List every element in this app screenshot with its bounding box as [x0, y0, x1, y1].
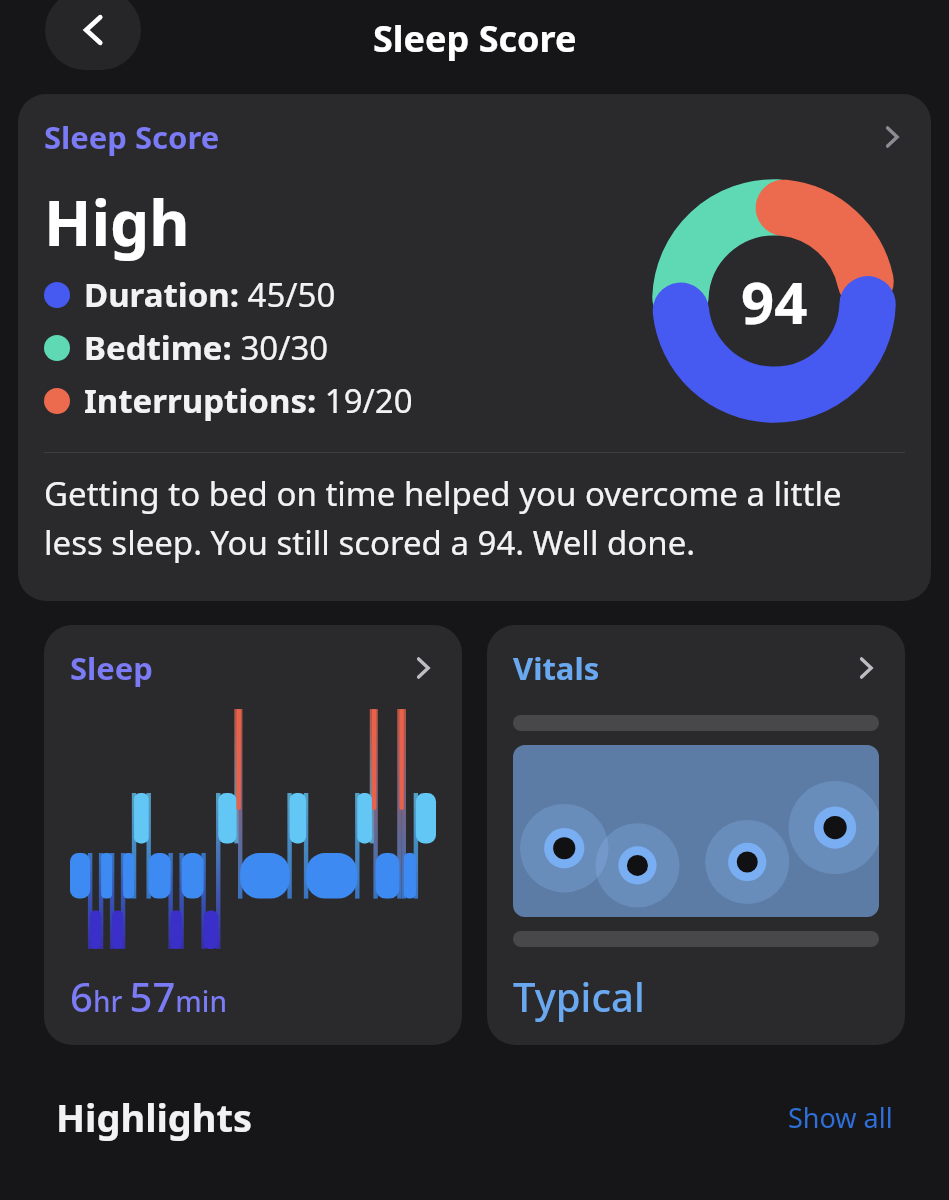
staticText: Sleep [70, 647, 153, 689]
staticText: Typical [513, 969, 645, 1023]
button[interactable]: Back [45, 0, 141, 70]
staticText: Getting to bed on time helped you overco… [44, 471, 905, 565]
staticText: Sleep Score [44, 116, 220, 158]
staticText: Bedtime: 30/30 [84, 325, 329, 370]
button[interactable]: Vitals [487, 625, 905, 1045]
button[interactable]: Sleep Score [18, 94, 931, 601]
staticText: 6hr 57min [70, 969, 227, 1023]
staticText: Duration: 45/50 [84, 272, 336, 317]
staticText: Sleep Score [373, 14, 577, 63]
staticText: Vitals [513, 647, 600, 689]
staticText: Highlights [56, 1091, 253, 1143]
button[interactable]: Sleep [44, 625, 462, 1045]
button[interactable]: Show all [788, 1099, 893, 1136]
staticText: Interruptions: 19/20 [84, 378, 413, 423]
staticText: High [44, 180, 190, 264]
staticText: 94 [741, 262, 808, 341]
staticText: Show all [788, 1099, 893, 1136]
